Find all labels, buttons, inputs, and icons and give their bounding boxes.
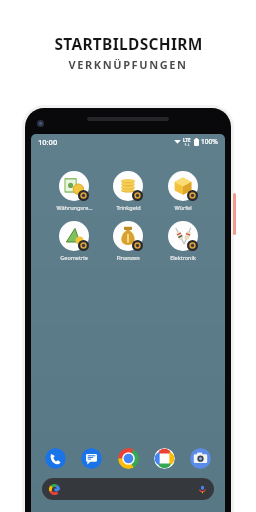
button[interactable]: Trinkgeld [103, 171, 153, 211]
button[interactable]: Elektronik [158, 221, 208, 261]
staticText: LTE [183, 137, 191, 143]
staticText: Finanzen [116, 254, 140, 261]
button[interactable]: Finanzen [103, 221, 153, 261]
button[interactable]: Geometrie [49, 221, 99, 261]
staticText: ↑↓ [184, 143, 190, 147]
button[interactable]: Phone [45, 448, 66, 469]
staticText: Elektronik [170, 254, 196, 261]
staticText: Würfel [174, 204, 192, 211]
button[interactable]: Messages [81, 448, 102, 469]
button[interactable]: Chrome [118, 448, 139, 469]
button[interactable]: Währungsre… [49, 171, 99, 211]
staticText: Trinkgeld [116, 204, 141, 211]
button[interactable]: Würfel [158, 171, 208, 211]
button[interactable]: Photos [154, 448, 175, 469]
staticText: 10:00 [38, 137, 58, 147]
staticText: Geometrie [60, 254, 88, 261]
button[interactable]: Camera [190, 448, 211, 469]
staticText: Währungsre… [56, 204, 93, 211]
staticText: 100% [201, 137, 218, 146]
staticText: VERKNÜPFUNGEN [68, 57, 188, 72]
staticText: STARTBILDSCHIRM [54, 33, 203, 54]
button[interactable] [42, 478, 214, 500]
